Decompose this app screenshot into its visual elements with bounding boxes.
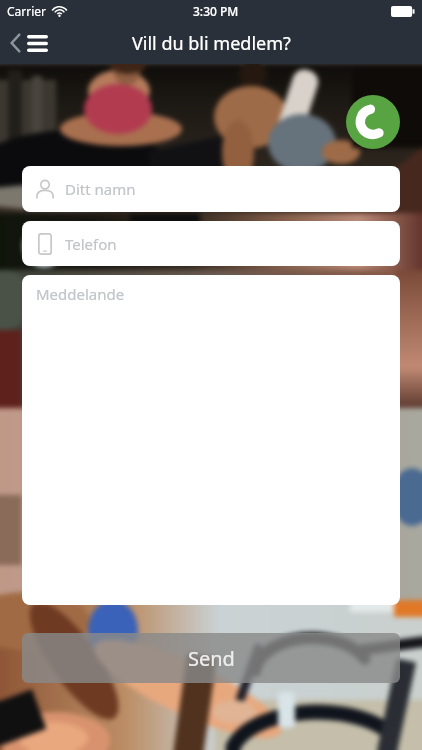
button[interactable]: Ditt namn bbox=[22, 166, 400, 212]
staticText: Ditt namn bbox=[65, 179, 136, 199]
staticText: 3:30 PM bbox=[193, 3, 239, 19]
button[interactable] bbox=[10, 33, 48, 53]
staticText: Carrier bbox=[7, 3, 47, 19]
staticText: Vill du bli medlem? bbox=[132, 31, 291, 56]
button[interactable]: Send bbox=[22, 633, 400, 683]
staticText: Telefon bbox=[65, 234, 117, 254]
button[interactable]: Meddelande bbox=[22, 275, 400, 605]
button[interactable] bbox=[346, 95, 400, 149]
staticText: Meddelande bbox=[36, 284, 125, 304]
staticText: Send bbox=[188, 645, 235, 672]
button[interactable]: Telefon bbox=[22, 221, 400, 266]
